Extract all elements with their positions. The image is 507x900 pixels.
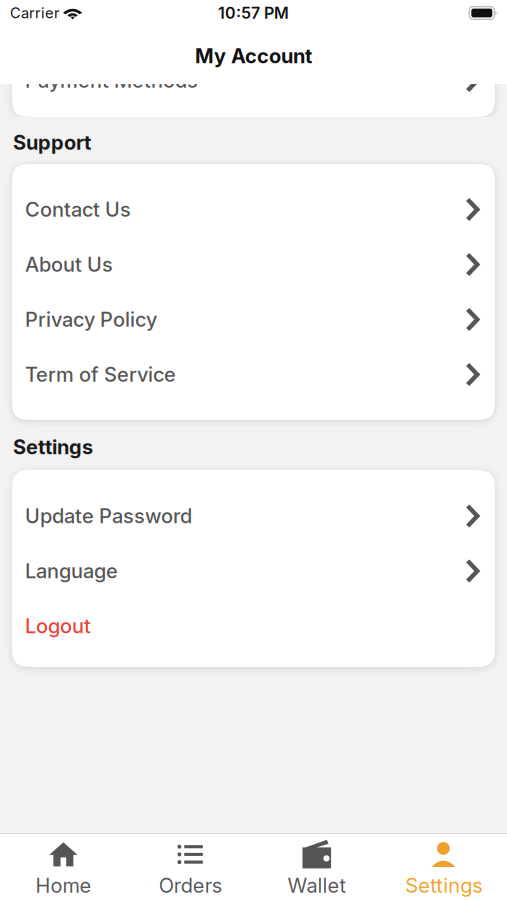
staticText: Contact Us (25, 197, 131, 222)
button[interactable]: Language (12, 543, 495, 598)
staticText: Term of Service (25, 362, 176, 387)
button[interactable]: Term of Service (12, 347, 495, 402)
staticText: Logout (25, 614, 91, 638)
button[interactable]: Privacy Policy (12, 292, 495, 347)
button[interactable]: Payment Methods (12, 53, 495, 108)
button[interactable]: Update Password (12, 488, 495, 543)
button[interactable]: About Us (12, 237, 495, 292)
button[interactable]: Logout (12, 598, 495, 653)
staticText: Update Password (25, 504, 192, 528)
staticText: My Account (195, 44, 312, 68)
button[interactable]: Wallet (253, 829, 380, 900)
staticText: Orders (159, 873, 222, 898)
staticText: Payment Methods (25, 68, 198, 93)
staticText: Language (25, 559, 118, 583)
button[interactable]: Contact Us (12, 182, 495, 237)
button[interactable]: Orders (127, 829, 254, 900)
staticText: Support (13, 130, 91, 155)
staticText: Settings (13, 435, 93, 459)
staticText: Home (35, 873, 91, 898)
staticText: About Us (25, 252, 113, 277)
staticText: Settings (405, 873, 482, 898)
staticText: 10:57 PM (218, 3, 289, 23)
staticText: Wallet (287, 873, 346, 898)
button[interactable]: Home (0, 829, 127, 900)
button[interactable]: Settings (380, 829, 507, 900)
staticText: Carrier (10, 4, 60, 22)
staticText: Privacy Policy (25, 307, 157, 332)
